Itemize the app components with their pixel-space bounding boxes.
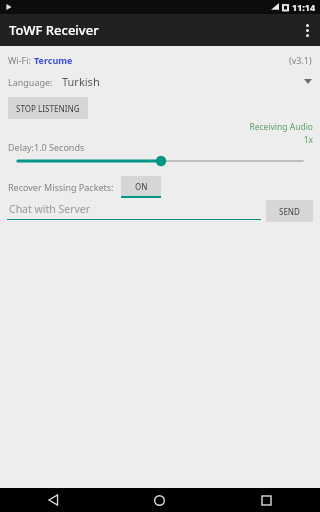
staticText: Turkish [62, 74, 100, 89]
staticText: Language: [8, 76, 53, 88]
button[interactable]: Chat with Server [7, 202, 261, 220]
staticText: (v3.1) [289, 54, 312, 66]
button[interactable]: Back [0, 488, 106, 512]
staticText: ON [135, 181, 148, 192]
button[interactable]: STOP LISTENING [8, 97, 88, 119]
staticText: STOP LISTENING [16, 103, 80, 114]
staticText: ToWF Receiver [9, 21, 99, 39]
staticText: Chat with Server [9, 202, 91, 216]
button[interactable]: More options [294, 14, 320, 46]
button[interactable]: ON [121, 176, 161, 198]
staticText: Recover Missing Packets: [8, 181, 114, 193]
staticText: 1x [303, 134, 313, 146]
button[interactable]: Recent apps [213, 488, 320, 512]
staticText: 11:14 [292, 1, 316, 13]
button[interactable]: SEND [266, 200, 313, 222]
staticText: Wi-Fi: [8, 54, 34, 66]
staticText: SEND [279, 206, 300, 217]
button[interactable]: Delay slider [0, 150, 320, 172]
staticText: Delay:1.0 Seconds [8, 141, 85, 153]
staticText: Receiving Audio [249, 121, 313, 133]
button[interactable]: Tercume [34, 54, 73, 66]
button[interactable]: Home [106, 488, 213, 512]
button[interactable]: Language: [8, 74, 312, 89]
